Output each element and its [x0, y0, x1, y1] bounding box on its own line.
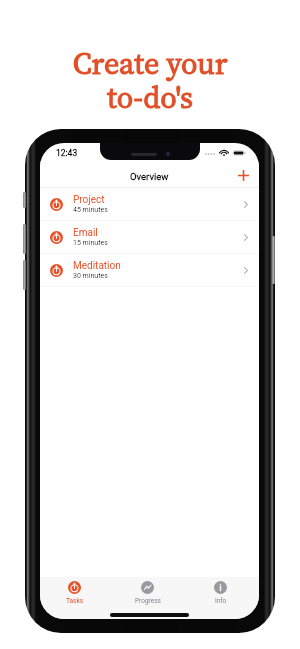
staticText: Progress [135, 597, 161, 605]
button[interactable]: Meditation [40, 254, 259, 286]
staticText: Info [215, 597, 227, 605]
staticText: Meditation [73, 260, 121, 272]
staticText: Project [73, 194, 105, 206]
button[interactable]: Add task [232, 164, 254, 186]
button[interactable]: Progress [111, 577, 184, 608]
button[interactable]: Info [184, 577, 257, 608]
button[interactable]: Email [40, 221, 259, 253]
staticText: 45 minutes [73, 206, 108, 214]
button[interactable]: Tasks [40, 577, 111, 608]
staticText: 15 minutes [73, 239, 108, 247]
staticText: 12:43 [56, 148, 78, 158]
staticText: Overview [130, 171, 169, 182]
staticText: 30 minutes [73, 272, 108, 280]
staticText: Email [73, 227, 98, 239]
staticText: Create your to-do's [0, 43, 300, 118]
button[interactable]: Project [40, 188, 259, 220]
staticText: Tasks [66, 597, 84, 605]
